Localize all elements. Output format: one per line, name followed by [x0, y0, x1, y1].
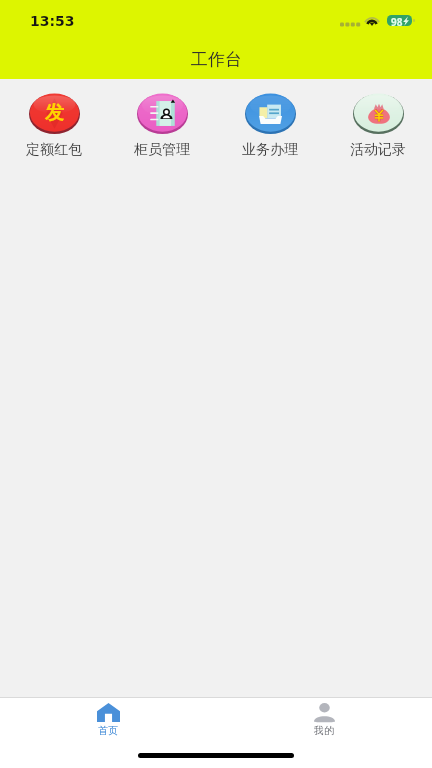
- staticText: 工作台: [191, 49, 242, 70]
- button[interactable]: 业务办理: [216, 93, 324, 159]
- button[interactable]: 柜员管理: [108, 93, 216, 159]
- staticText: 活动记录: [350, 141, 406, 159]
- staticText: 发: [45, 101, 64, 125]
- staticText: 定额红包: [26, 141, 82, 159]
- staticText: 柜员管理: [134, 141, 190, 159]
- staticText: 我的: [314, 724, 334, 737]
- staticText: 首页: [98, 724, 118, 737]
- button[interactable]: 我的: [216, 698, 432, 739]
- staticText: 13:53: [30, 13, 75, 29]
- button[interactable]: 首页: [0, 698, 216, 739]
- staticText: 业务办理: [242, 141, 298, 159]
- button[interactable]: 发: [0, 93, 108, 159]
- staticText: 98: [391, 15, 403, 26]
- button[interactable]: 活动记录: [324, 93, 432, 159]
